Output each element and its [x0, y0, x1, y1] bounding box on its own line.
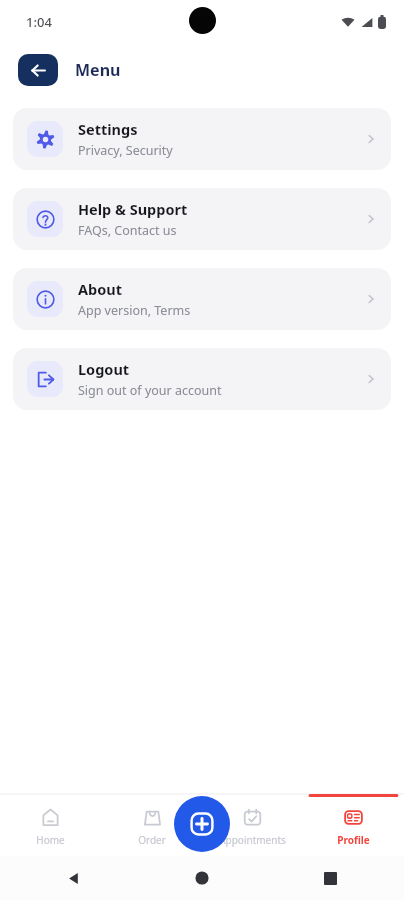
button[interactable]: Recents [316, 864, 344, 892]
button[interactable]: Appointments [202, 794, 303, 856]
staticText: Menu [75, 59, 121, 81]
staticText: FAQs, Contact us [78, 222, 177, 239]
staticText: Appointments [219, 833, 286, 847]
button[interactable]: Back [60, 864, 88, 892]
staticText: Logout [78, 359, 130, 379]
staticText: Settings [78, 119, 138, 139]
button[interactable]: Back [18, 54, 58, 86]
button[interactable]: Add [174, 796, 230, 852]
staticText: Profile [337, 833, 370, 847]
button[interactable]: Profile [303, 794, 404, 856]
button[interactable]: About [13, 268, 391, 330]
staticText: Order [138, 833, 166, 847]
button[interactable]: Settings [13, 108, 391, 170]
staticText: App version, Terms [78, 302, 191, 319]
button[interactable]: Logout [13, 348, 391, 410]
button[interactable]: Home [0, 794, 101, 856]
staticText: 1:04 [26, 13, 52, 31]
staticText: Sign out of your account [78, 382, 222, 399]
staticText: Help & Support [78, 199, 188, 219]
staticText: About [78, 279, 122, 299]
button[interactable]: Order [101, 794, 202, 856]
button[interactable]: Home [188, 864, 216, 892]
button[interactable]: Help & Support [13, 188, 391, 250]
staticText: Home [36, 833, 65, 847]
staticText: Privacy, Security [78, 142, 173, 159]
